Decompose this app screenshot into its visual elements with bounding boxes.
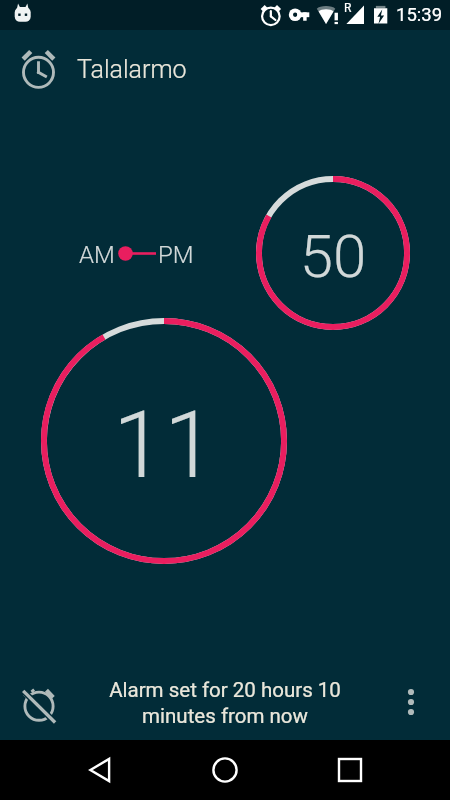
button[interactable]: AM [79, 241, 115, 269]
staticText: Alarm set for 20 hours 10 minutes from n… [90, 678, 360, 728]
staticText: 11 [54, 392, 274, 500]
button[interactable]: Alarm [8, 38, 68, 98]
button[interactable]: Alarm set for 20 hours 10 minutes from n… [90, 678, 360, 728]
button[interactable]: PM [158, 241, 194, 269]
button[interactable]: 11 [54, 392, 274, 500]
button[interactable]: Recent apps [312, 740, 388, 800]
staticText: AM [79, 241, 115, 269]
staticText: PM [158, 241, 194, 269]
button[interactable]: Back [62, 740, 138, 800]
staticText: 15:39 [396, 4, 443, 26]
button[interactable]: Home [187, 740, 263, 800]
staticText: 50 [223, 221, 443, 291]
staticText: R [344, 1, 352, 15]
button[interactable]: More options [388, 665, 434, 738]
staticText: Talalarmo [77, 55, 187, 84]
button[interactable]: 50 [223, 221, 443, 291]
button[interactable]: Turn alarm off [8, 667, 70, 740]
